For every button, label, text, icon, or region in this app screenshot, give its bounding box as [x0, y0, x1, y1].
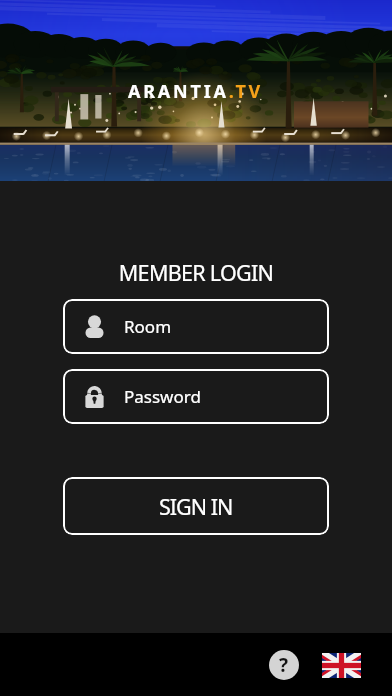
staticText: Room — [124, 315, 172, 338]
button[interactable]: Password — [63, 369, 329, 424]
staticText: ? — [279, 652, 289, 678]
staticText: ARANTIA.TV — [128, 79, 264, 104]
button[interactable]: Help — [269, 650, 299, 680]
button[interactable]: SIGN IN — [63, 477, 329, 535]
staticText: SIGN IN — [159, 492, 233, 521]
button[interactable]: Language English — [322, 653, 361, 678]
staticText: Password — [124, 385, 201, 408]
staticText: MEMBER LOGIN — [0, 258, 392, 287]
button[interactable]: Room — [63, 299, 329, 354]
